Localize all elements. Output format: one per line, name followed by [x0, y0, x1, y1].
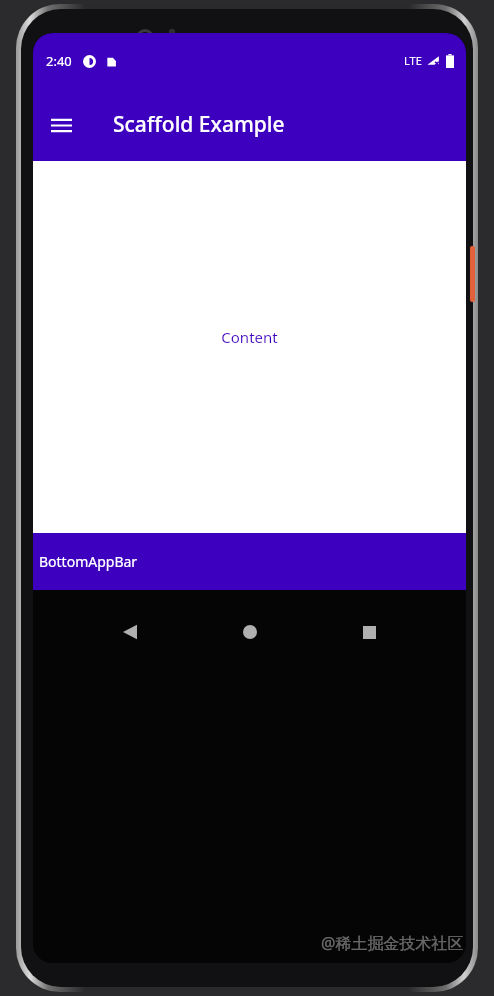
button[interactable]: Back	[108, 610, 152, 654]
staticText: 2:40	[46, 52, 72, 70]
staticText: Content	[221, 327, 278, 347]
button[interactable]: Open navigation menu	[37, 101, 85, 149]
staticText: @稀土掘金技术社区	[321, 932, 464, 954]
staticText: BottomAppBar	[39, 552, 138, 571]
button[interactable]: Home	[228, 610, 272, 654]
staticText: Scaffold Example	[113, 110, 285, 139]
staticText: LTE	[404, 53, 422, 68]
button[interactable]: BottomAppBar	[33, 533, 466, 590]
button[interactable]: Recent apps	[347, 610, 391, 654]
